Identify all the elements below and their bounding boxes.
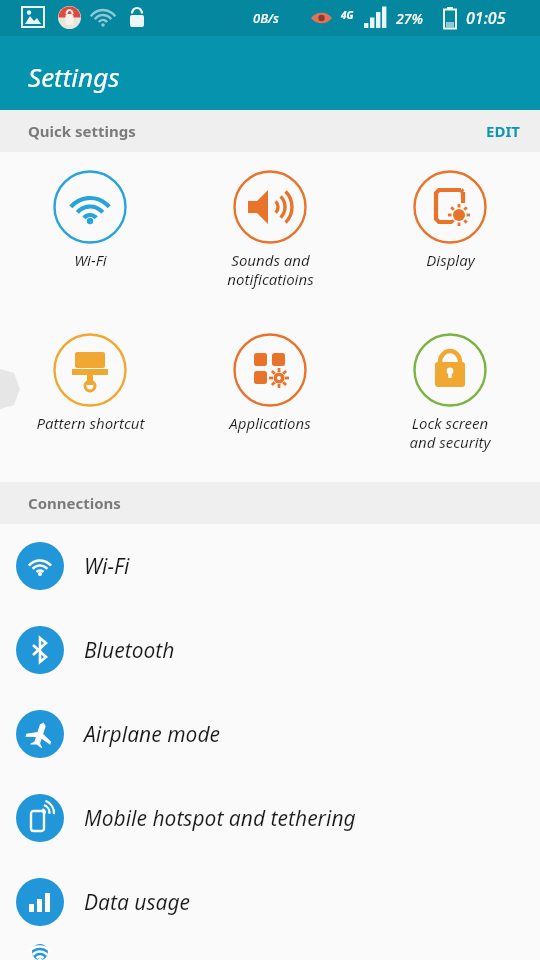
staticText: Quick settings — [28, 121, 136, 141]
staticText: Wi-Fi — [84, 552, 130, 581]
staticText: Lock screen and security — [409, 413, 491, 452]
button[interactable]: Sounds and notificatioins — [180, 152, 360, 289]
button[interactable]: Pattern shortcut — [0, 315, 180, 433]
button[interactable] — [0, 944, 540, 960]
button[interactable]: Data usage — [0, 860, 540, 944]
button[interactable]: Lock screen and security — [360, 315, 540, 452]
staticText: Display — [426, 250, 475, 270]
staticText: Sounds and notificatioins — [227, 250, 314, 289]
staticText: 0B/s — [253, 9, 279, 27]
staticText: Mobile hotspot and tethering — [84, 804, 356, 833]
staticText: Data usage — [84, 888, 191, 917]
staticText: EDIT — [486, 121, 520, 141]
staticText: Connections — [28, 493, 121, 513]
button[interactable]: Bluetooth — [0, 608, 540, 692]
staticText: Applications — [229, 413, 311, 433]
button[interactable]: Airplane mode — [0, 692, 540, 776]
button[interactable]: Wi-Fi — [0, 152, 180, 270]
staticText: Settings — [28, 59, 120, 94]
staticText: Pattern shortcut — [36, 413, 145, 433]
staticText: Wi-Fi — [74, 250, 107, 270]
button[interactable]: Applications — [180, 315, 360, 433]
staticText: 4G — [341, 8, 354, 22]
staticText: Airplane mode — [84, 720, 221, 749]
button[interactable]: Mobile hotspot and tethering — [0, 776, 540, 860]
staticText: Bluetooth — [84, 636, 175, 665]
button[interactable]: Wi-Fi — [0, 524, 540, 608]
staticText: 27% — [396, 9, 423, 28]
staticText: 01:05 — [466, 7, 506, 29]
button[interactable]: Display — [360, 152, 540, 270]
button[interactable]: EDIT — [466, 113, 540, 149]
